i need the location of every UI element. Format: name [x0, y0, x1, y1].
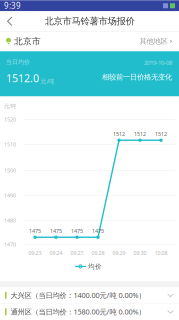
staticText: 1490: [4, 192, 16, 199]
staticText: 09.30: [133, 249, 146, 256]
staticText: 2019-10-08: [144, 58, 172, 66]
staticText: 09.28: [91, 249, 104, 256]
staticText: 北京市马铃薯市场报价: [44, 15, 134, 27]
staticText: 1475: [50, 227, 62, 234]
staticText: 09.29: [112, 249, 125, 256]
staticText: 当日均价: [6, 58, 30, 66]
staticText: 1510: [4, 141, 16, 148]
staticText: 大兴区（当日均价：1400.00元/吨 0.00%）: [7, 290, 146, 300]
staticText: 元/吨: [4, 102, 16, 109]
staticText: 10.08: [154, 249, 167, 256]
staticText: 09.27: [70, 249, 83, 256]
staticText: 1512: [113, 130, 125, 137]
staticText: 09.24: [49, 249, 62, 256]
staticText: 1512: [155, 130, 167, 137]
staticText: 1512: [134, 130, 146, 137]
staticText: 通州区（当日均价：1580.00元/吨 0.00%）: [7, 307, 146, 317]
staticText: 1470: [4, 241, 16, 248]
staticText: 1475: [92, 227, 104, 234]
button[interactable]: 大兴区（当日均价：1400.00元/吨 0.00%）: [0, 287, 179, 303]
staticText: 相较前一日价格无变化: [102, 72, 172, 82]
staticText: 1512.0: [6, 71, 39, 85]
staticText: 北京市: [11, 36, 41, 47]
button[interactable]: 通州区（当日均价：1580.00元/吨 0.00%）: [0, 304, 179, 320]
staticText: 1500: [4, 167, 16, 174]
staticText: 9:39: [4, 0, 21, 11]
staticText: 1520: [4, 116, 16, 123]
staticText: 1480: [4, 217, 16, 224]
button[interactable]: 返回: [0, 11, 18, 31]
staticText: 1475: [29, 227, 41, 234]
button[interactable]: 其他地区: [139, 37, 173, 46]
staticText: 元/吨: [40, 77, 54, 85]
staticText: 均价: [88, 262, 102, 271]
staticText: 09.23: [28, 249, 41, 256]
staticText: 1475: [71, 227, 83, 234]
staticText: 其他地区: [139, 37, 167, 46]
